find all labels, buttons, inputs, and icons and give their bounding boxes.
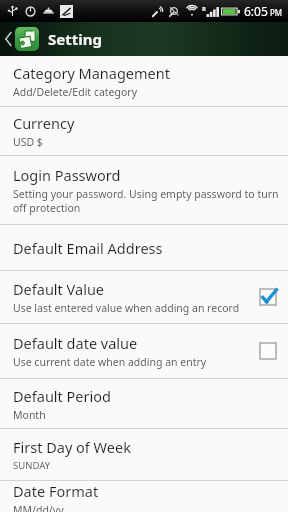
staticText: Category Management [13,63,170,83]
staticText: 6:05 [244,3,268,19]
staticText: PM [270,7,283,18]
button[interactable]: Checked [257,286,279,308]
staticText: Currency [13,113,75,133]
staticText: Date Format [13,481,99,501]
staticText: Login Password [13,165,121,185]
button[interactable]: Default Period [0,379,288,428]
button[interactable]: Currency [0,107,288,155]
staticText: First Day of Week [13,437,131,457]
button[interactable]: Login Password [0,156,288,224]
staticText: Use current date when adding an entry [13,355,207,369]
staticText: Use last entered value when adding an re… [13,301,240,315]
staticText: Setting [48,29,102,49]
staticText: Month [13,408,46,422]
staticText: Add/Delete/Edit category [13,85,138,99]
staticText: Setting your password. Using empty passw… [13,187,279,215]
button[interactable]: Date Format [0,481,288,512]
button[interactable]: First Day of Week [0,429,288,480]
button[interactable]: Category Management [0,56,288,106]
staticText: USD $ [13,135,43,149]
staticText: Default Value [13,279,105,299]
button[interactable]: Default Email Address [0,225,288,270]
button[interactable]: Default date value [0,324,288,378]
other: Up [3,22,14,56]
button[interactable]: Unchecked [257,340,279,362]
staticText: R [202,5,206,13]
staticText: Default date value [13,333,138,353]
staticText: Default Period [13,386,111,406]
staticText: Default Email Address [13,238,163,258]
button[interactable]: Up [0,22,288,56]
staticText: SUNDAY [13,459,51,472]
staticText: MM/dd/yy [13,503,64,512]
button[interactable]: Default Value [0,271,288,323]
